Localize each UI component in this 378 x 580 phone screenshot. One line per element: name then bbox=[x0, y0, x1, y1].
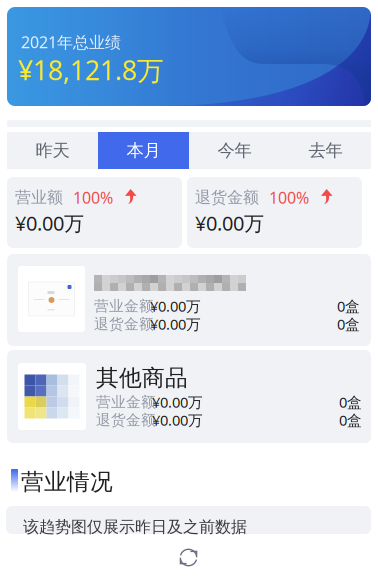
button[interactable]: 营业金额 bbox=[7, 254, 371, 346]
staticText: 营业额 bbox=[15, 188, 63, 207]
staticText: 去年 bbox=[308, 140, 342, 161]
staticText: ¥0.00万 bbox=[15, 210, 84, 236]
staticText: 0盒 bbox=[337, 296, 360, 316]
button[interactable]: 本月 bbox=[98, 132, 189, 169]
staticText: ¥18,121.8万 bbox=[18, 52, 164, 88]
button[interactable]: 昨天 bbox=[7, 132, 98, 169]
staticText: 退货金额 bbox=[195, 188, 259, 207]
staticText: 0盒 bbox=[339, 392, 362, 412]
staticText: ¥0.00万 bbox=[195, 210, 264, 236]
button[interactable]: 今年 bbox=[189, 132, 280, 169]
button[interactable]: 其他商品 bbox=[7, 350, 371, 443]
staticText: 营业情况 bbox=[21, 468, 113, 496]
staticText: ¥0.00万 bbox=[152, 392, 203, 412]
staticText: 昨天 bbox=[35, 140, 69, 161]
button[interactable]: Refresh bbox=[178, 547, 199, 568]
staticText: 退货金额 bbox=[96, 411, 156, 429]
staticText: 营业金额 bbox=[96, 393, 156, 411]
staticText: 今年 bbox=[217, 140, 251, 161]
staticText: ¥0.00万 bbox=[150, 314, 201, 334]
staticText: 100% bbox=[73, 187, 113, 208]
staticText: 退货金额 bbox=[94, 315, 154, 333]
button[interactable]: 去年 bbox=[280, 132, 371, 169]
staticText: 2021年总业绩 bbox=[21, 31, 121, 53]
staticText: 其他商品 bbox=[96, 364, 188, 392]
staticText: ¥0.00万 bbox=[150, 296, 201, 316]
staticText: 本月 bbox=[126, 140, 160, 161]
staticText: 0盒 bbox=[337, 314, 360, 334]
staticText: 该趋势图仅展示昨日及之前数据 bbox=[23, 517, 247, 537]
staticText: 0盒 bbox=[339, 410, 362, 430]
staticText: 营业金额 bbox=[94, 297, 154, 315]
staticText: ¥0.00万 bbox=[152, 410, 203, 430]
staticText: 100% bbox=[269, 187, 309, 208]
